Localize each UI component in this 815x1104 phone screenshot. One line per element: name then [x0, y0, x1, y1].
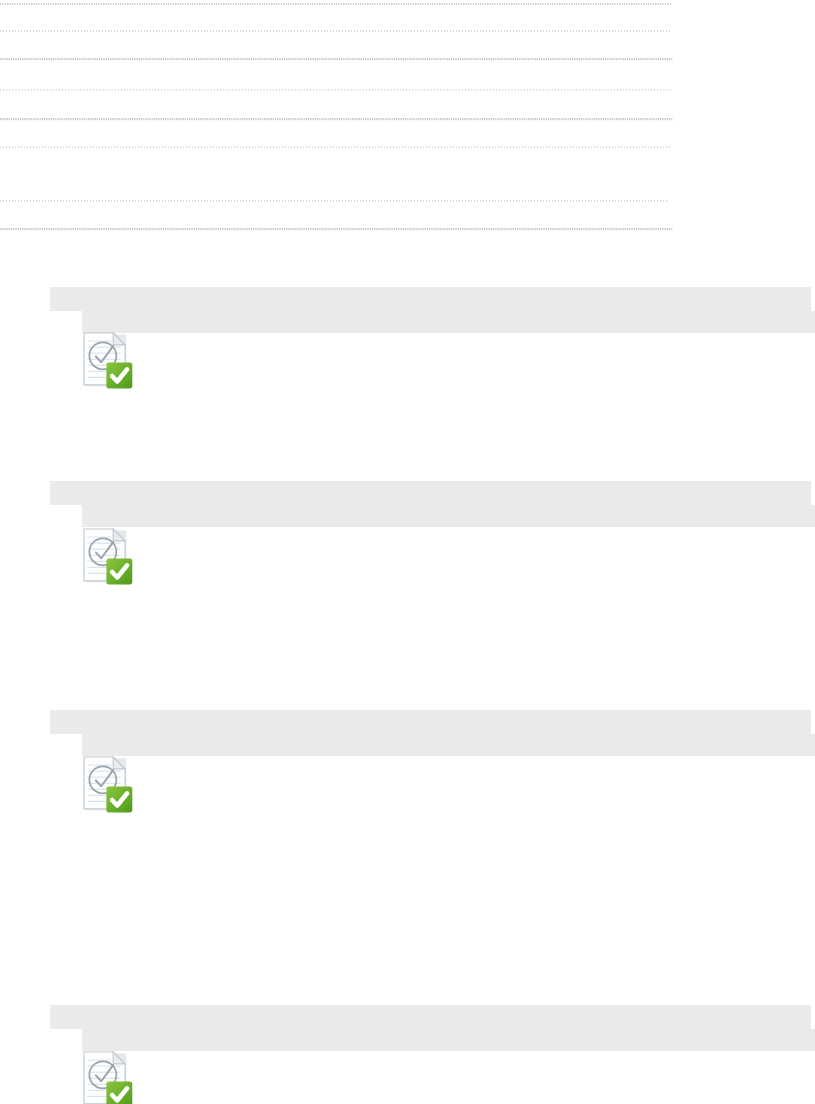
- button[interactable]: Document result 1: [50, 287, 815, 387]
- button[interactable]: Document result 3: [50, 710, 815, 813]
- button[interactable]: Document result 4: [50, 1005, 815, 1104]
- button[interactable]: Document result 2: [50, 481, 815, 583]
